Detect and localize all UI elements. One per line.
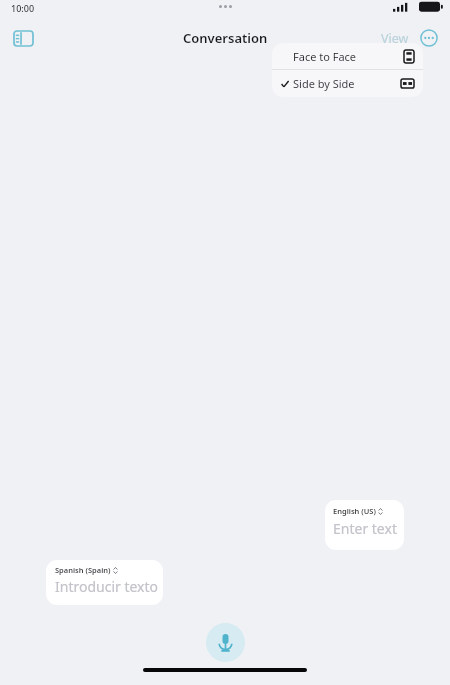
button[interactable]: More options [416, 25, 442, 51]
button[interactable]: Spanish (Spain) [46, 560, 163, 605]
button[interactable]: Record speech [206, 623, 245, 662]
button[interactable]: View [377, 26, 413, 51]
staticText: Introducir texto [55, 577, 159, 596]
staticText: Side by Side [293, 76, 355, 91]
staticText: Spanish (Spain) [55, 565, 111, 575]
button[interactable]: Side by Side [272, 70, 423, 97]
staticText: View [381, 30, 409, 47]
button[interactable]: English (US) [325, 500, 404, 550]
button[interactable]: Show sidebar [8, 23, 38, 53]
staticText: Conversation [183, 29, 268, 47]
staticText: 10:00 [11, 2, 35, 14]
staticText: Face to Face [293, 49, 357, 64]
staticText: English (US) [333, 506, 376, 516]
staticText: Enter text [333, 519, 397, 538]
button[interactable]: Face to Face [272, 43, 423, 69]
